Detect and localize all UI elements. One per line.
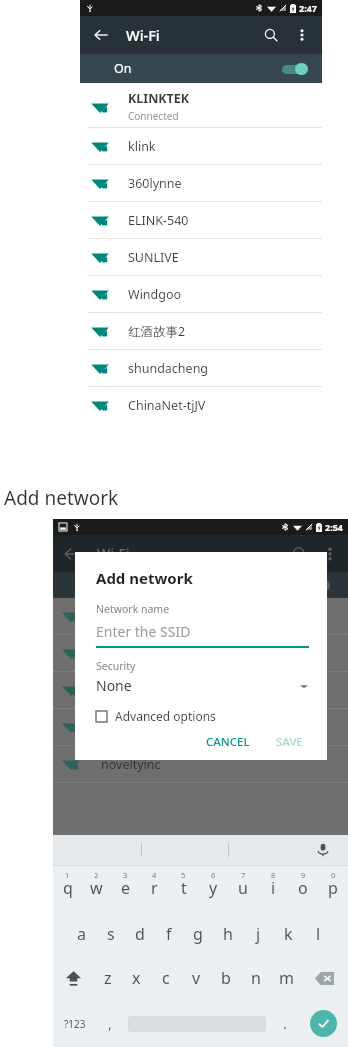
- button[interactable]: Enter the SSID: [96, 622, 309, 648]
- staticText: Wi-Fi: [126, 25, 160, 45]
- button[interactable]: b: [211, 956, 241, 1000]
- staticText: q: [63, 877, 73, 899]
- button[interactable]: Windgoo: [80, 276, 322, 312]
- button[interactable]: Shift: [53, 956, 93, 1000]
- staticText: .: [283, 1014, 287, 1033]
- staticText: 2:54: [325, 521, 343, 533]
- staticText: 4: [152, 870, 157, 880]
- staticText: 2:47: [299, 2, 317, 14]
- button[interactable]: CANCEL: [200, 728, 256, 756]
- button[interactable]: g: [183, 912, 213, 956]
- staticText: ,: [108, 1014, 112, 1033]
- button[interactable]: x: [122, 956, 151, 1000]
- button[interactable]: More options: [292, 25, 312, 45]
- staticText: Connected: [128, 109, 179, 123]
- button[interactable]: a: [67, 912, 96, 956]
- button[interactable]: v: [181, 956, 211, 1000]
- button[interactable]: Voice input: [312, 839, 334, 861]
- button[interactable]: ?123: [53, 1000, 96, 1047]
- button[interactable]: 4: [140, 866, 169, 912]
- staticText: m: [279, 967, 294, 989]
- staticText: k: [284, 923, 293, 945]
- button[interactable]: SUNLIVE: [80, 239, 322, 275]
- staticText: z: [104, 967, 112, 989]
- button[interactable]: Back: [90, 24, 112, 46]
- staticText: 9: [301, 870, 306, 880]
- staticText: 3: [123, 870, 128, 880]
- button[interactable]: d: [125, 912, 154, 956]
- button[interactable]: 2: [82, 866, 111, 912]
- button[interactable]: SAVE: [270, 728, 309, 756]
- button[interactable]: j: [243, 912, 273, 956]
- staticText: e: [121, 877, 131, 899]
- button[interactable]: Space: [123, 1000, 271, 1047]
- staticText: g: [193, 923, 203, 945]
- button[interactable]: 6: [198, 866, 228, 912]
- staticText: u: [238, 877, 248, 899]
- staticText: Security: [96, 659, 136, 673]
- button[interactable]: 0: [318, 866, 348, 912]
- staticText: CANCEL: [206, 734, 250, 750]
- staticText: shundacheng: [128, 360, 209, 377]
- staticText: p: [328, 877, 338, 899]
- staticText: KLINKTEK: [128, 90, 190, 107]
- staticText: SAVE: [276, 734, 303, 750]
- staticText: noveltyinc: [101, 756, 161, 773]
- staticText: h: [223, 923, 233, 945]
- staticText: 360lynne: [128, 175, 182, 192]
- staticText: r: [151, 877, 158, 899]
- button[interactable]: s: [96, 912, 125, 956]
- staticText: j: [256, 923, 261, 945]
- staticText: Windgoo: [128, 286, 182, 303]
- staticText: s: [107, 923, 115, 945]
- staticText: ChinaNet-tjJV: [128, 397, 206, 414]
- staticText: 红酒故事2: [128, 323, 186, 340]
- button[interactable]: m: [271, 956, 301, 1000]
- staticText: 5: [181, 870, 186, 880]
- staticText: Wi-Fi: [97, 544, 130, 563]
- button[interactable]: Backspace: [301, 956, 348, 1000]
- button[interactable]: c: [151, 956, 181, 1000]
- button[interactable]: 7: [228, 866, 258, 912]
- button[interactable]: klink: [80, 128, 322, 164]
- staticText: 2: [94, 870, 99, 880]
- staticText: klink: [128, 138, 156, 155]
- staticText: x: [132, 967, 141, 989]
- button[interactable]: z: [93, 956, 122, 1000]
- button[interactable]: KLINKTEK: [80, 86, 322, 127]
- button[interactable]: ChinaNet-tjJV: [80, 387, 322, 423]
- staticText: On: [114, 60, 132, 77]
- staticText: n: [251, 967, 261, 989]
- staticText: b: [221, 967, 231, 989]
- button[interactable]: ,: [96, 1000, 123, 1047]
- button[interactable]: k: [273, 912, 303, 956]
- button[interactable]: 9: [288, 866, 318, 912]
- button[interactable]: n: [241, 956, 271, 1000]
- button[interactable]: l: [303, 912, 333, 956]
- button[interactable]: Search: [260, 24, 282, 46]
- staticText: Advanced options: [115, 708, 216, 724]
- staticText: Add network: [4, 485, 119, 511]
- button[interactable]: 3: [111, 866, 140, 912]
- staticText: 8: [271, 870, 276, 880]
- staticText: d: [135, 923, 145, 945]
- staticText: f: [166, 923, 172, 945]
- button[interactable]: h: [213, 912, 243, 956]
- button[interactable]: Enter: [298, 1000, 348, 1047]
- staticText: 1: [65, 870, 70, 880]
- button[interactable]: f: [154, 912, 183, 956]
- button[interactable]: 8: [258, 866, 288, 912]
- button[interactable]: 360lynne: [80, 165, 322, 201]
- staticText: l: [316, 923, 321, 945]
- staticText: ?123: [64, 1017, 86, 1031]
- staticText: Network name: [96, 602, 170, 616]
- button[interactable]: None: [96, 676, 309, 695]
- button[interactable]: Advanced options: [96, 708, 216, 724]
- button[interactable]: .: [271, 1000, 298, 1047]
- button[interactable]: shundacheng: [80, 350, 322, 386]
- button[interactable]: ELINK-540: [80, 202, 322, 238]
- button[interactable]: 红酒故事2: [80, 313, 322, 349]
- button[interactable]: 5: [169, 866, 198, 912]
- button[interactable]: On: [80, 54, 322, 83]
- button[interactable]: 1: [53, 866, 82, 912]
